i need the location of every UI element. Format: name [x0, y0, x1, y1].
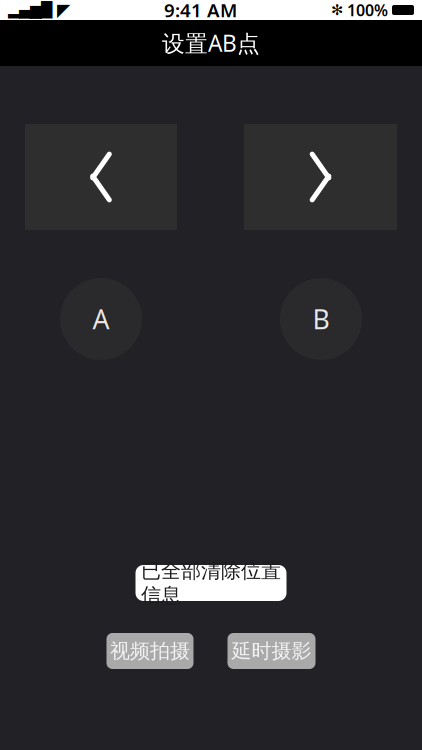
staticText: ▂▄▆█ — [8, 2, 52, 18]
button[interactable]: 上一个 — [25, 124, 177, 230]
staticText: ✻ — [331, 2, 343, 18]
button[interactable]: 下一个 — [244, 124, 397, 230]
staticText: 延时摄影 — [231, 639, 311, 663]
staticText: 已全部清除位置信息 — [141, 558, 281, 607]
staticText: 100% — [347, 0, 388, 21]
staticText: A — [92, 301, 109, 337]
staticText: 9:41 AM — [164, 0, 237, 22]
button[interactable]: A — [60, 278, 142, 360]
button[interactable]: B — [280, 278, 362, 360]
staticText: ◤ — [57, 0, 70, 20]
staticText: 视频拍摄 — [110, 639, 190, 663]
staticText: 设置AB点 — [162, 28, 260, 58]
staticText: B — [312, 301, 329, 337]
button[interactable]: 延时摄影 — [227, 633, 315, 669]
button[interactable]: 视频拍摄 — [106, 633, 193, 669]
